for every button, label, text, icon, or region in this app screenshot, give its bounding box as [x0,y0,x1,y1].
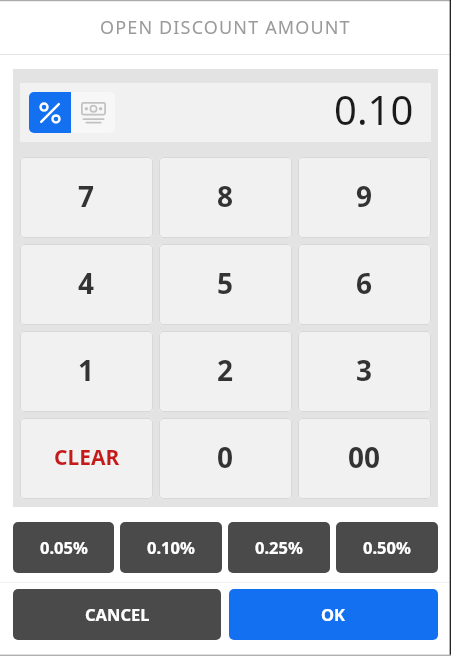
staticText: 1 [78,351,95,389]
button[interactable]: 1 [20,331,153,412]
button[interactable]: 0 [159,418,292,499]
button[interactable]: 6 [298,244,431,325]
button[interactable]: Amount discount [71,92,115,133]
staticText: 2 [217,351,234,389]
button[interactable]: 0.50% [336,522,438,573]
button[interactable]: CLEAR [20,418,153,499]
button[interactable]: 0.25% [228,522,330,573]
staticText: OK [321,603,346,625]
button[interactable]: 5 [159,244,292,325]
button[interactable]: 8 [159,157,292,238]
staticText: 6 [356,264,373,302]
staticText: 9 [356,177,373,215]
button[interactable]: OK [229,589,438,640]
staticText: 8 [217,177,234,215]
staticText: 0.50% [363,536,411,558]
button[interactable]: Percent discount [29,92,71,133]
staticText: 5 [217,264,234,302]
button[interactable]: 0.05% [13,522,114,573]
button[interactable]: 4 [20,244,153,325]
button[interactable]: 7 [20,157,153,238]
staticText: CLEAR [54,443,120,472]
staticText: 3 [356,351,373,389]
staticText: 7 [78,177,95,215]
staticText: 0.05% [40,536,88,558]
staticText: OPEN DISCOUNT AMOUNT [100,15,351,40]
button[interactable]: 2 [159,331,292,412]
button[interactable]: 9 [298,157,431,238]
staticText: 0.10% [147,536,195,558]
button[interactable]: CANCEL [13,589,221,640]
staticText: 0.25% [255,536,303,558]
staticText: CANCEL [85,603,150,625]
button[interactable]: 0.10% [120,522,222,573]
staticText: 4 [78,264,95,302]
staticText: 00 [348,438,381,476]
button[interactable]: 00 [298,418,431,499]
button[interactable]: 3 [298,331,431,412]
staticText: 0 [217,438,234,476]
staticText: 0.10 [334,82,414,136]
